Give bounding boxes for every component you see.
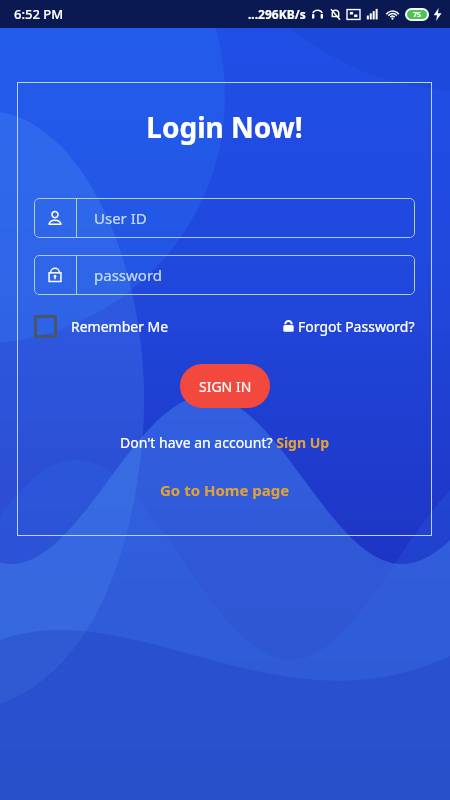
staticText: Remember Me — [71, 317, 169, 336]
staticText: SIGN IN — [199, 377, 252, 396]
staticText: password — [94, 265, 162, 285]
button[interactable]: Don't have an account? Sign Up — [112, 430, 338, 455]
button[interactable]: Remember Me — [34, 311, 169, 342]
button[interactable]: User ID — [34, 198, 415, 238]
button[interactable]: Go to Home page — [152, 477, 298, 503]
button[interactable]: password — [34, 255, 415, 295]
staticText: Go to Home page — [160, 480, 290, 500]
staticText: User ID — [94, 208, 147, 228]
staticText: Login Now! — [146, 108, 303, 146]
staticText: ...296KB/s — [248, 6, 306, 22]
button[interactable]: SIGN IN — [180, 364, 270, 408]
staticText: Forgot Password? — [298, 317, 415, 336]
staticText: 75 — [413, 10, 422, 19]
staticText: Don't have an account? Sign Up — [120, 433, 330, 452]
staticText: 6:52 PM — [14, 5, 64, 23]
button[interactable]: Forgot Password? — [282, 313, 415, 340]
